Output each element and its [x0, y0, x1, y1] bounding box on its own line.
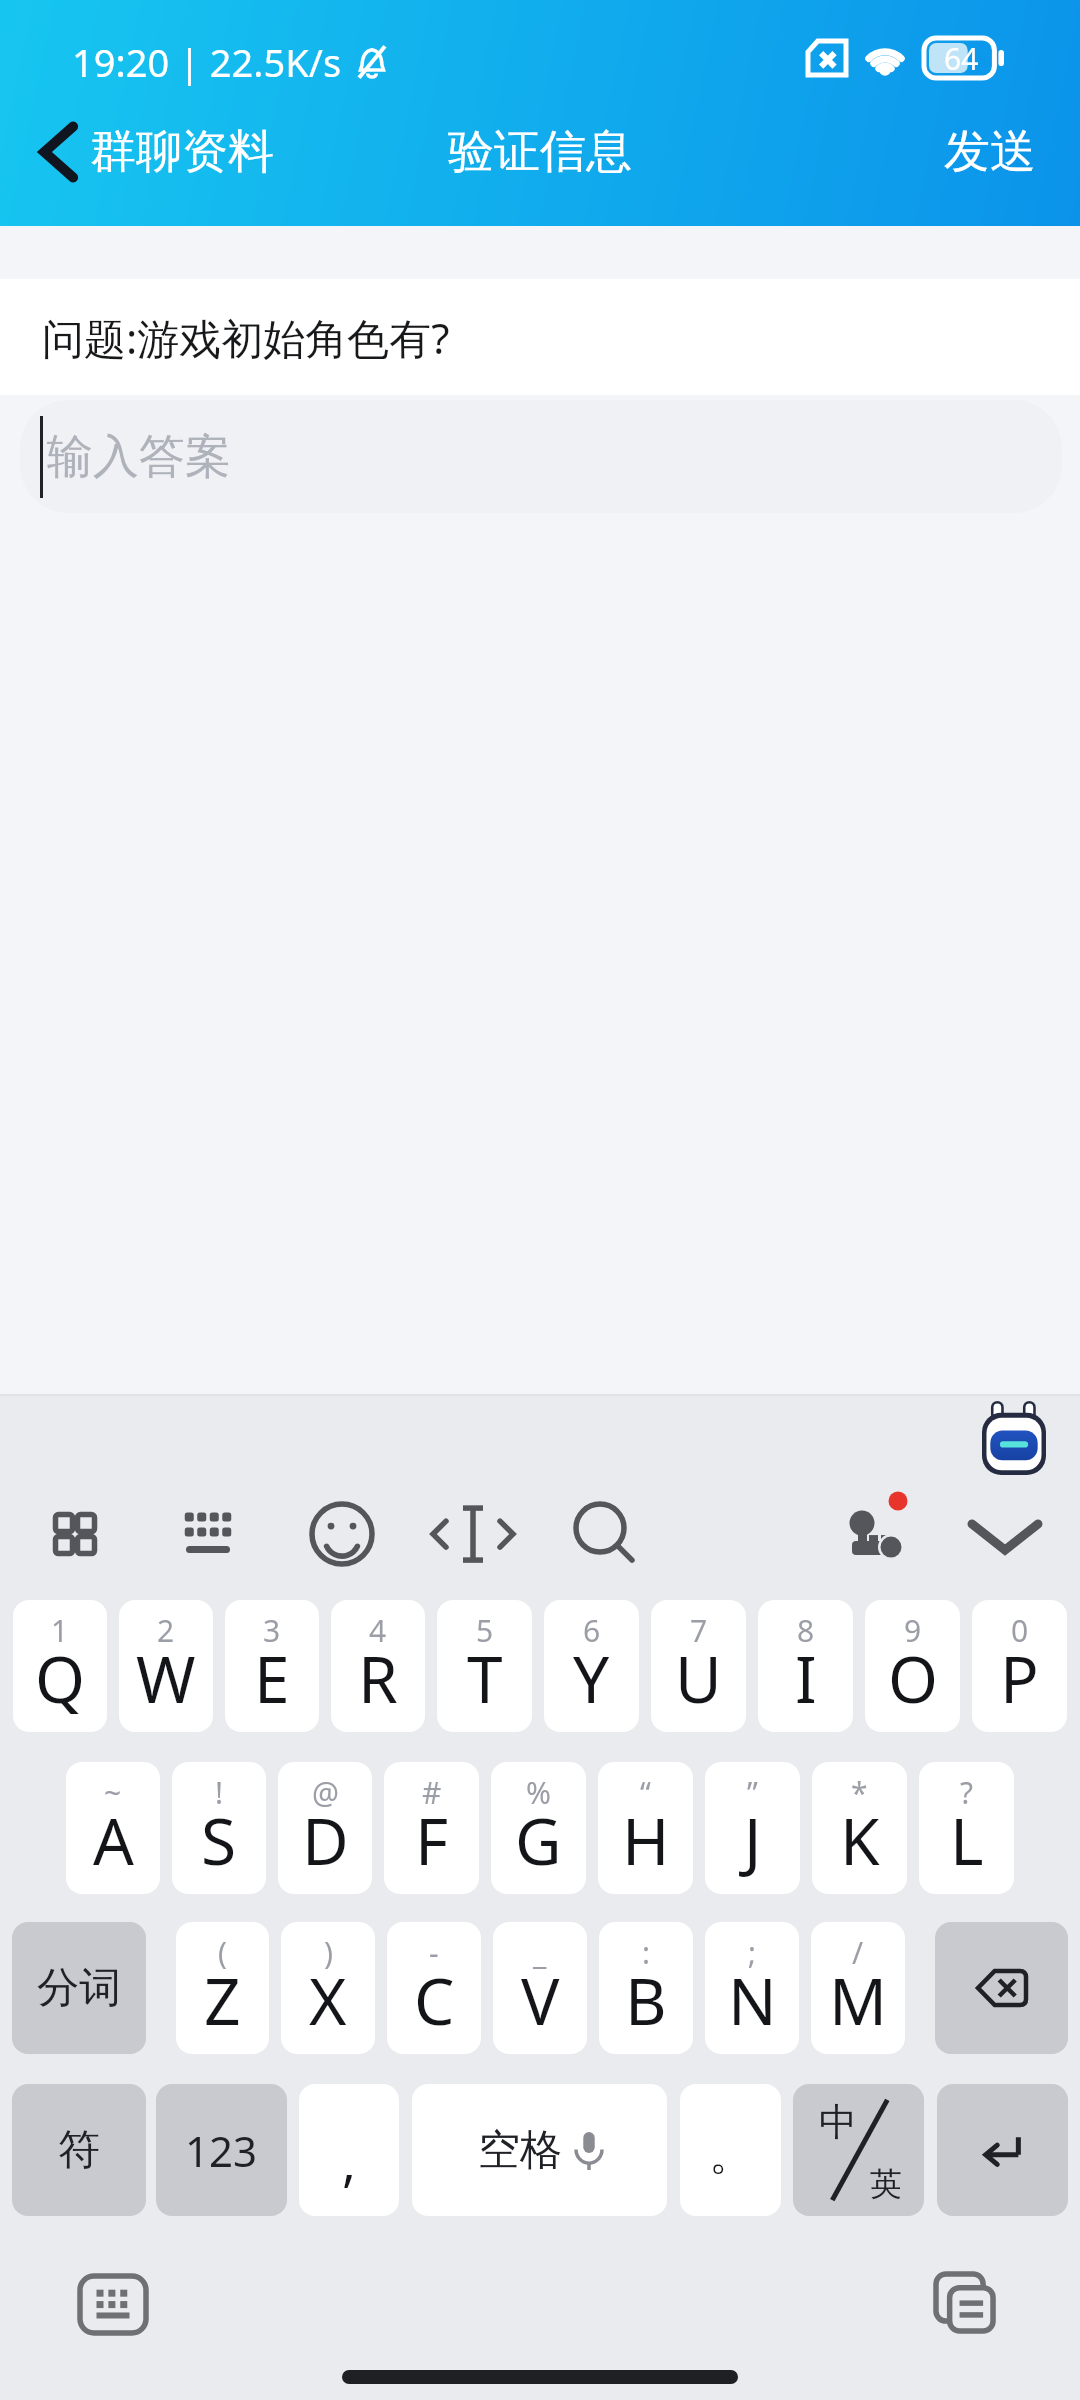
staticText: 6 [583, 1610, 601, 1651]
staticText: _ [533, 1932, 547, 1973]
staticText: “ [640, 1772, 651, 1813]
staticText: R [358, 1635, 398, 1722]
button[interactable]: _ [493, 1922, 587, 2054]
button[interactable]: 8 [758, 1600, 853, 1732]
staticText: 4 [369, 1610, 387, 1651]
staticText: ) [324, 1932, 333, 1973]
button[interactable]: ! [172, 1762, 266, 1894]
button[interactable]: 符 [12, 2084, 146, 2216]
button[interactable]: 1 [13, 1600, 107, 1732]
button[interactable] [80, 2276, 146, 2333]
staticText: 8 [797, 1610, 815, 1651]
staticText: Q [35, 1635, 85, 1722]
staticText: 英 [870, 2164, 902, 2204]
button[interactable]: 3 [225, 1600, 319, 1732]
staticText: 。 [709, 2127, 753, 2182]
button[interactable]: ( [176, 1922, 269, 2054]
button[interactable]: * [812, 1762, 907, 1894]
staticText: 64 [944, 38, 979, 78]
staticText: % [526, 1772, 551, 1813]
staticText: 输入答案 [47, 428, 231, 486]
staticText: N [728, 1957, 777, 2044]
button[interactable]: 2 [119, 1600, 213, 1732]
staticText: V [521, 1957, 560, 2044]
staticText: 符 [58, 2124, 100, 2177]
button[interactable] [937, 2084, 1068, 2216]
staticText: P [1000, 1635, 1039, 1722]
button[interactable]: ; [705, 1922, 799, 2054]
staticText: E [254, 1635, 290, 1722]
staticText: K [840, 1797, 880, 1884]
staticText: U [675, 1635, 722, 1722]
button[interactable]: 中 [793, 2084, 924, 2216]
staticText: W [136, 1635, 196, 1722]
button[interactable]: / [811, 1922, 905, 2054]
button[interactable]: - [387, 1922, 481, 2054]
button[interactable]: : [599, 1922, 693, 2054]
staticText: Z [204, 1957, 241, 2044]
staticText: L [950, 1797, 984, 1884]
staticText: 验证信息 [448, 123, 632, 181]
staticText: C [414, 1957, 455, 2044]
staticText: 3 [263, 1610, 281, 1651]
button[interactable]: 空格 [412, 2084, 667, 2216]
staticText: G [515, 1797, 562, 1884]
staticText: 5 [476, 1610, 494, 1651]
staticText: 问题:游戏初始角色有? [42, 309, 450, 366]
staticText: O [888, 1635, 938, 1722]
staticText: T [467, 1635, 503, 1722]
button[interactable]: % [491, 1762, 586, 1894]
button[interactable] [936, 2274, 998, 2336]
staticText: 9 [904, 1610, 922, 1651]
staticText: I [795, 1635, 817, 1722]
button[interactable] [935, 1922, 1068, 2054]
button[interactable]: , [299, 2084, 399, 2216]
staticText: ? [960, 1772, 974, 1813]
staticText: @ [312, 1772, 339, 1813]
staticText: 发送 [944, 123, 1036, 181]
staticText: S [201, 1797, 237, 1884]
button[interactable]: ” [705, 1762, 800, 1894]
staticText: H [622, 1797, 670, 1884]
button[interactable]: ) [281, 1922, 375, 2054]
staticText: 19:20 | 22.5K/s [72, 36, 342, 88]
button[interactable]: “ [598, 1762, 693, 1894]
staticText: 1 [51, 1610, 69, 1651]
button[interactable]: 发送 [944, 123, 1036, 181]
button[interactable] [982, 1401, 1046, 1475]
button[interactable]: # [384, 1762, 479, 1894]
staticText: ! [215, 1772, 224, 1813]
button[interactable]: ~ [66, 1762, 160, 1894]
staticText: 分词 [37, 1962, 121, 2015]
button[interactable]: 9 [865, 1600, 960, 1732]
button[interactable]: 输入答案 [20, 400, 1062, 513]
staticText: ~ [104, 1772, 122, 1813]
button[interactable]: ? [919, 1762, 1014, 1894]
button[interactable]: 6 [544, 1600, 639, 1732]
button[interactable]: 0 [972, 1600, 1067, 1732]
staticText: A [93, 1797, 134, 1884]
staticText: D [302, 1797, 349, 1884]
staticText: Y [573, 1635, 610, 1722]
staticText: 群聊资料 [90, 123, 274, 181]
staticText: # [422, 1772, 442, 1813]
button[interactable]: 分词 [12, 1922, 146, 2054]
staticText: / [852, 1932, 864, 1973]
staticText: , [342, 2125, 356, 2196]
staticText: - [429, 1932, 439, 1973]
staticText: ; [748, 1932, 757, 1973]
staticText: 2 [157, 1610, 175, 1651]
button[interactable]: 4 [331, 1600, 425, 1732]
button[interactable]: 7 [651, 1600, 746, 1732]
staticText: * [851, 1772, 868, 1813]
button[interactable]: 群聊资料 [40, 123, 274, 181]
staticText: F [415, 1797, 449, 1884]
staticText: 0 [1011, 1610, 1029, 1651]
button[interactable]: 。 [680, 2084, 781, 2216]
button[interactable]: 5 [437, 1600, 532, 1732]
staticText: X [309, 1957, 347, 2044]
button[interactable]: 123 [156, 2084, 287, 2216]
staticText: 123 [185, 2122, 258, 2179]
button[interactable]: @ [278, 1762, 372, 1894]
staticText: J [744, 1797, 762, 1884]
